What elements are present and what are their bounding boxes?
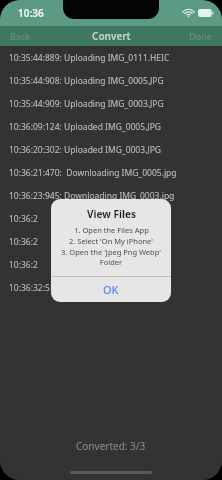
staticText: 3. Open the 'Jpeg Png Webp' Folder: [55, 247, 167, 267]
button[interactable]: 10:36:09:124: Uploaded IMG_0005.JPG: [0, 115, 222, 138]
staticText: 10:35:44:889: Uploading IMG_0111.HEIC: [9, 52, 170, 64]
staticText: 2. Select 'On My iPhone': [69, 236, 153, 246]
button[interactable]: Done: [179, 27, 222, 45]
staticText: 10:36:32:515: Downloaded IMG_0111.jpg: [9, 282, 172, 294]
staticText: 10:35:44:909: Uploading IMG_0003.JPG: [9, 98, 164, 110]
button[interactable]: OK: [51, 277, 171, 302]
staticText: 10:36:2: [9, 236, 38, 248]
button[interactable]: Back: [0, 27, 41, 45]
button[interactable]: 10:36:20:302: Uploaded IMG_0003.JPG: [0, 138, 222, 161]
button[interactable]: 10:36:2: [0, 207, 222, 230]
button[interactable]: 10:36:21:470: Downloading IMG_0005.jpg: [0, 161, 222, 184]
other: Wi-Fi: [183, 9, 194, 17]
staticText: 10:35:44:908: Uploading IMG_0005.JPG: [9, 75, 164, 87]
button[interactable]: 10:35:44:908: Uploading IMG_0005.JPG: [0, 69, 222, 92]
other: Battery: [198, 9, 214, 17]
staticText: 10:36: [18, 6, 44, 20]
staticText: 10:36:20:302: Uploaded IMG_0003.JPG: [9, 144, 162, 156]
staticText: 1. Open the Files App: [74, 225, 149, 235]
staticText: Convert: [92, 29, 131, 43]
button[interactable]: 10:36:2: [0, 253, 222, 276]
staticText: 10:36:21:470: Downloading IMG_0005.jpg: [9, 167, 177, 179]
staticText: OK: [103, 282, 119, 297]
staticText: Back: [10, 30, 31, 42]
button[interactable]: 10:36:23:945: Downloading IMG_0003.jpg: [0, 184, 222, 207]
staticText: 10:36:2: [9, 213, 38, 225]
button[interactable]: 10:36:32:515: Downloaded IMG_0111.jpg: [0, 276, 222, 299]
staticText: View Files: [87, 207, 136, 221]
staticText: 10:36:23:945: Downloading IMG_0003.jpg: [9, 190, 175, 202]
staticText: Done: [189, 30, 212, 42]
button[interactable]: 10:35:44:909: Uploading IMG_0003.JPG: [0, 92, 222, 115]
button[interactable]: 10:36:2: [0, 230, 222, 253]
staticText: Converted: 3/3: [76, 439, 146, 453]
staticText: 10:36:09:124: Uploaded IMG_0005.JPG: [9, 121, 162, 133]
button[interactable]: 10:35:44:889: Uploading IMG_0111.HEIC: [0, 46, 222, 69]
staticText: 10:36:2: [9, 259, 38, 271]
